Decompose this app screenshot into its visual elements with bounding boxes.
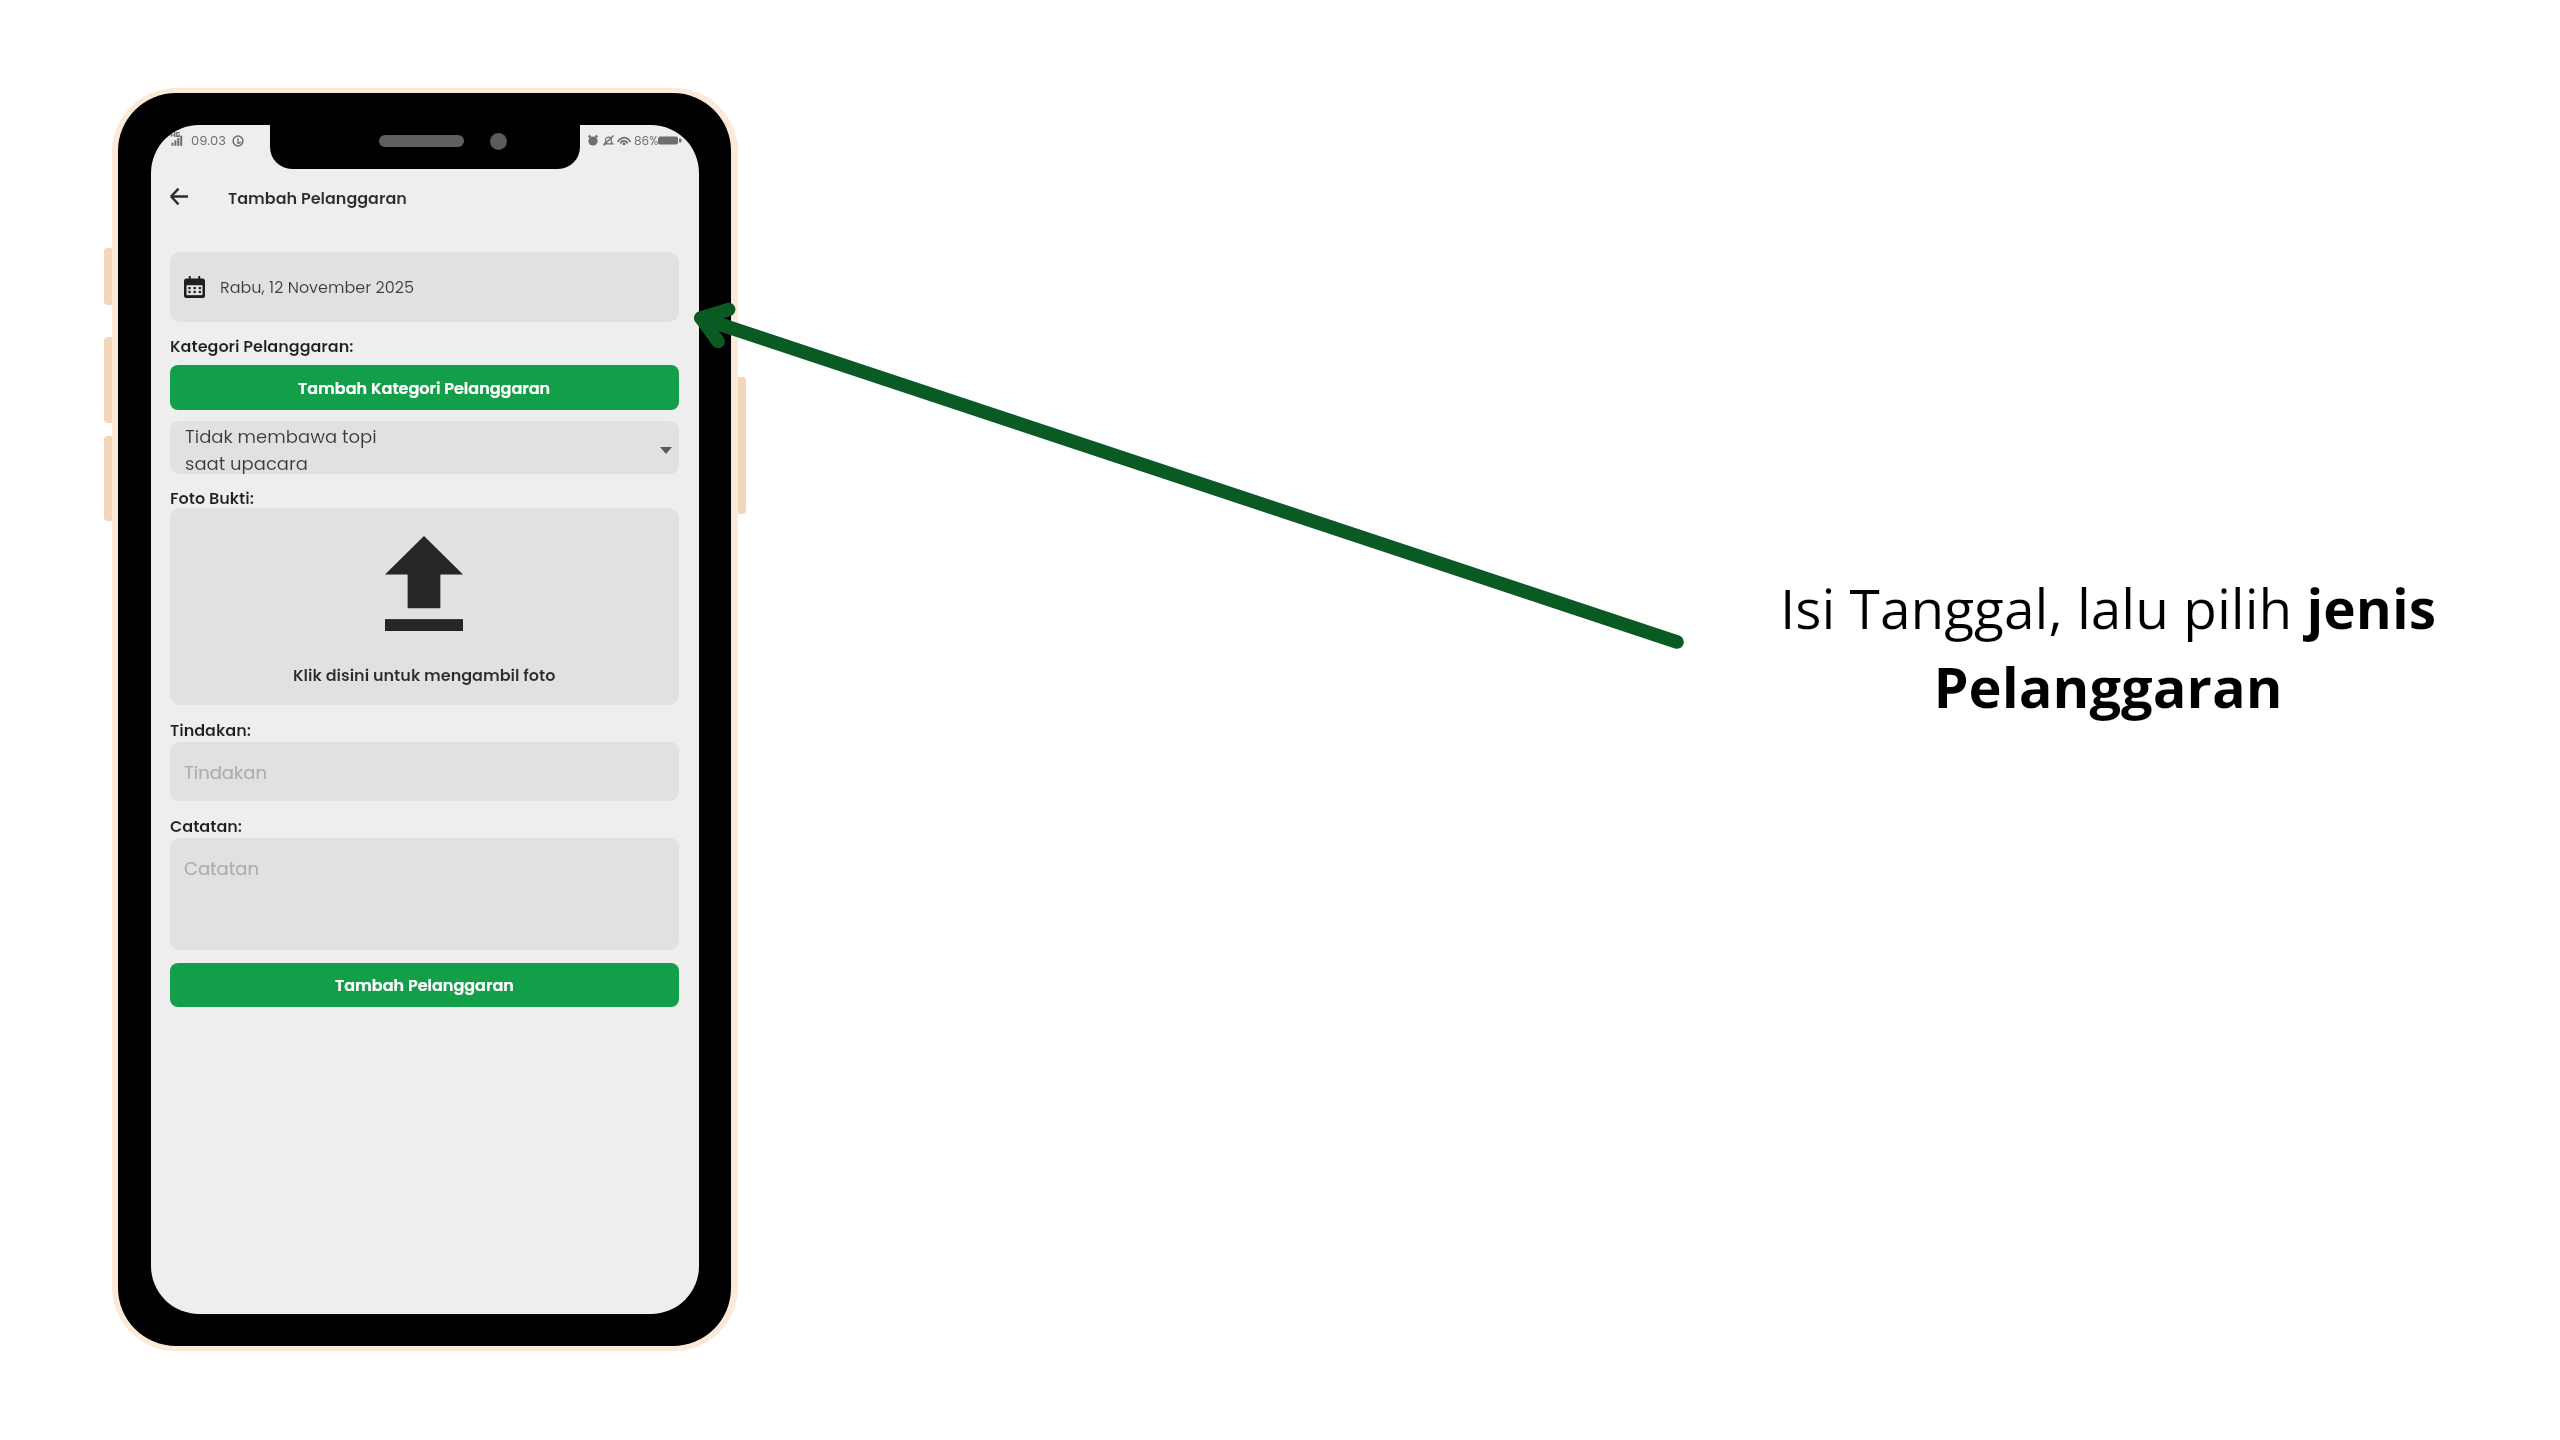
staticText: Rabu, 12 November 2025 <box>220 276 414 298</box>
button[interactable]: Tidak membawa topi saat upacara <box>170 421 679 474</box>
staticText: Tambah Pelanggaran <box>335 974 514 996</box>
staticText: Tambah Kategori Pelanggaran <box>298 377 551 399</box>
button[interactable]: Catatan <box>170 838 679 950</box>
button[interactable]: Back <box>162 180 195 213</box>
staticText: Catatan: <box>170 815 243 837</box>
button[interactable]: Tindakan <box>170 742 679 801</box>
staticText: Tambah Pelanggaran <box>228 187 407 209</box>
staticText: Foto Bukti: <box>170 487 254 509</box>
staticText: Tindakan <box>184 760 267 785</box>
button[interactable]: Tambah Pelanggaran <box>170 963 679 1007</box>
staticText: Pelanggaran <box>1708 648 2508 724</box>
staticText: Isi Tanggal, lalu pilih jenis <box>1708 570 2508 645</box>
button[interactable]: Klik disini untuk mengambil foto <box>170 508 679 705</box>
staticText: Tidak membawa topi saat upacara <box>185 424 377 474</box>
button[interactable]: Tambah Kategori Pelanggaran <box>170 365 679 410</box>
staticText: 09.03 <box>191 131 226 149</box>
button[interactable]: Rabu, 12 November 2025 <box>170 252 679 322</box>
staticText: Klik disini untuk mengambil foto <box>293 664 556 686</box>
staticText: Kategori Pelanggaran: <box>170 335 354 357</box>
staticText: Catatan <box>184 856 260 881</box>
staticText: Tindakan: <box>170 719 251 741</box>
staticText: 86% <box>634 132 659 149</box>
